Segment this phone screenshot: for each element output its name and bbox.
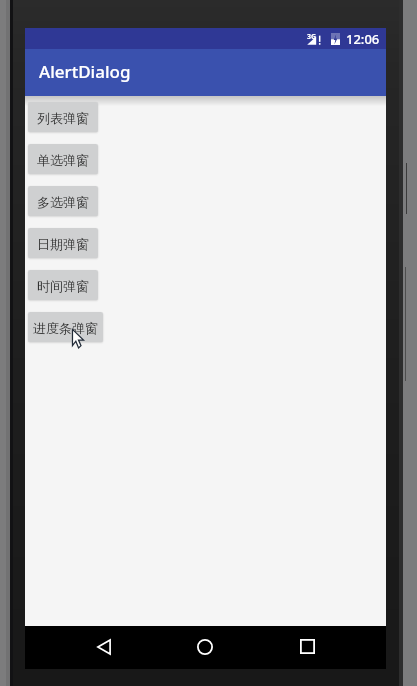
staticText: 3G	[307, 32, 317, 42]
button[interactable]: Home	[181, 625, 229, 668]
button[interactable]: 多选弹窗	[28, 186, 98, 216]
staticText: 日期弹窗	[37, 236, 89, 252]
staticText: 时间弹窗	[37, 278, 89, 294]
staticText: AlertDialog	[39, 60, 131, 83]
button[interactable]: 时间弹窗	[28, 270, 98, 300]
button[interactable]: 日期弹窗	[28, 228, 98, 258]
staticText: 单选弹窗	[37, 152, 89, 168]
staticText: 进度条弹窗	[33, 320, 98, 336]
button[interactable]: Back	[80, 625, 128, 668]
button[interactable]: 进度条弹窗	[28, 312, 103, 342]
staticText: 列表弹窗	[37, 110, 89, 126]
button[interactable]: 列表弹窗	[28, 102, 98, 132]
button[interactable]: Recent apps	[283, 625, 331, 668]
staticText: 12:06	[346, 30, 380, 48]
button[interactable]: 单选弹窗	[28, 144, 98, 174]
staticText: 多选弹窗	[37, 194, 89, 210]
